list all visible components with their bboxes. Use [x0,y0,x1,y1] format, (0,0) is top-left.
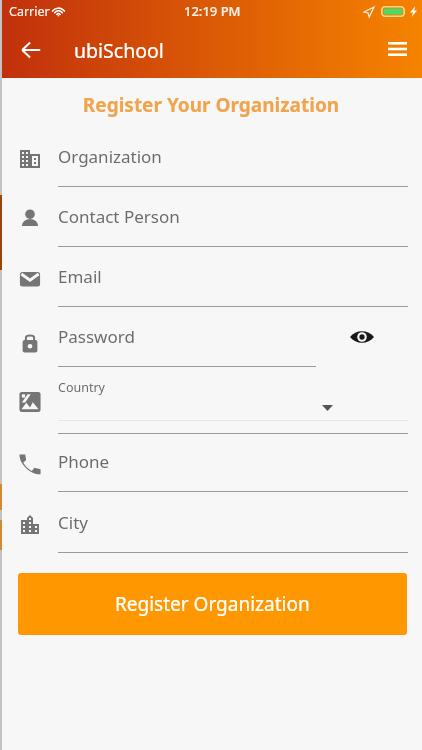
staticText: Register Your Organization [0,92,422,118]
staticText: Contact Person [58,205,180,228]
staticText: Password [58,325,135,348]
staticText: Email [58,265,102,288]
staticText: Organization [58,145,162,168]
staticText: Carrier [9,3,50,20]
button[interactable]: Menu [377,29,417,69]
staticText: Country [58,379,105,396]
staticText: City [58,511,88,534]
button[interactable]: Back [12,31,50,69]
staticText: Phone [58,450,110,473]
staticText: ubiSchool [74,37,164,64]
button[interactable]: Show password [346,321,378,353]
button[interactable]: Register Organization [18,573,407,635]
button[interactable]: Select country [322,405,333,411]
staticText: 12:19 PM [184,2,241,20]
staticText: Register Organization [115,591,310,617]
